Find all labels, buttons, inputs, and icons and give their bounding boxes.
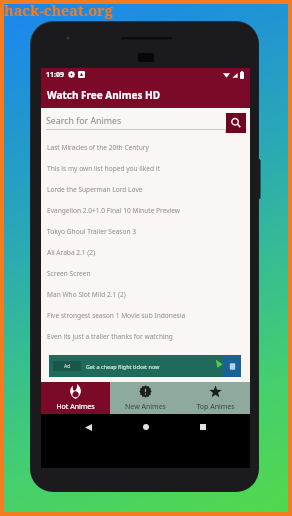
staticText: Watch Free Animes HD [47, 88, 161, 102]
button[interactable]: Five strongest season 1 Movie sub Indone… [41, 305, 250, 326]
button[interactable]: Top Animes [180, 382, 250, 414]
button[interactable]: Last Miracles of the 20th Century [41, 137, 250, 158]
button[interactable]: Lorde the Superman Lord Love [41, 179, 250, 200]
staticText: Even its just a trailer thanks for watch… [47, 332, 173, 341]
button[interactable]: Recent apps [193, 417, 213, 437]
staticText: Search for Animes [46, 115, 122, 127]
staticText: hack-cheat.org [4, 0, 113, 20]
button[interactable]: Tokyo Ghoul Trailer Season 3 [41, 221, 250, 242]
staticText: Evangelion 2.0+1.0 Final 10 Minute Previ… [47, 206, 181, 215]
button[interactable]: Ali Araba 2.1 (2) [41, 242, 250, 263]
button[interactable]: Ad [49, 355, 241, 377]
staticText: Lorde the Superman Lord Love [47, 185, 143, 194]
button[interactable]: Back [78, 417, 98, 437]
staticText: New Animes [125, 402, 166, 412]
staticText: 11:09 [46, 70, 64, 80]
staticText: Man Who Slot Mild 2.1 (2) [47, 290, 126, 299]
staticText: Get a cheap flight ticket now [86, 363, 160, 370]
button[interactable]: Evangelion 2.0+1.0 Final 10 Minute Previ… [41, 200, 250, 221]
staticText: Screen Screen [47, 269, 91, 278]
staticText: Five strongest season 1 Movie sub Indone… [47, 311, 186, 320]
button[interactable]: New Animes [110, 382, 180, 414]
button[interactable]: Screen Screen [41, 263, 250, 284]
staticText: Ali Araba 2.1 (2) [47, 248, 96, 257]
button[interactable]: Search [226, 113, 246, 133]
staticText: Ad [64, 363, 71, 370]
staticText: Last Miracles of the 20th Century [47, 143, 149, 152]
staticText: This is my own list hoped you liked it [47, 164, 160, 173]
button[interactable]: This is my own list hoped you liked it [41, 158, 250, 179]
button[interactable]: Man Who Slot Mild 2.1 (2) [41, 284, 250, 305]
staticText: Top Animes [196, 402, 235, 412]
staticText: Hot Animes [56, 402, 95, 412]
staticText: Tokyo Ghoul Trailer Season 3 [47, 227, 137, 236]
button[interactable]: Home [136, 417, 156, 437]
button[interactable]: Even its just a trailer thanks for watch… [41, 326, 250, 347]
button[interactable]: Hot Animes [41, 382, 110, 414]
